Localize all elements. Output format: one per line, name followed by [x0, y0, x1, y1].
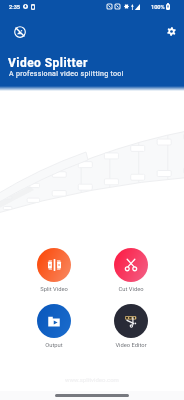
button[interactable]: Split Video	[22, 248, 86, 293]
button[interactable]: Cut Video	[99, 248, 163, 293]
button[interactable]: Output	[22, 304, 86, 349]
staticText: Video Editor	[115, 342, 147, 349]
button[interactable]: Remove ads	[5, 17, 34, 46]
staticText: Output	[45, 342, 63, 349]
staticText: Cut Video	[118, 286, 144, 293]
button[interactable]: Settings	[157, 17, 184, 46]
staticText: Split Video	[40, 286, 68, 293]
staticText: 2:35	[9, 4, 21, 11]
button[interactable]: Video Editor	[99, 304, 163, 349]
staticText: www.splitvideo.com	[65, 376, 119, 383]
staticText: 100%	[151, 4, 165, 11]
staticText: Video Splitter	[8, 56, 88, 70]
staticText: A professional video splitting tool	[9, 70, 124, 78]
